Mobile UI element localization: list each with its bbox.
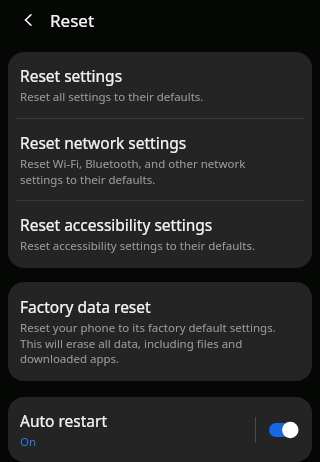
staticText: Reset all settings to their defaults. — [20, 89, 204, 105]
staticText: Reset network settings — [20, 132, 187, 153]
staticText: Reset — [50, 9, 95, 32]
staticText: Reset your phone to its factory default … — [20, 320, 276, 366]
staticText: Reset accessibility settings — [20, 214, 213, 235]
staticText: Reset settings — [20, 65, 123, 86]
button[interactable]: Back — [14, 5, 44, 35]
staticText: Reset accessibility settings to their de… — [20, 238, 255, 254]
staticText: Auto restart — [20, 410, 108, 431]
button[interactable]: Reset settings — [8, 52, 312, 118]
staticText: On — [20, 434, 37, 450]
staticText: Reset Wi-Fi, Bluetooth, and other networ… — [20, 156, 246, 187]
staticText: Factory data reset — [20, 296, 151, 317]
button[interactable]: Reset network settings — [8, 119, 312, 200]
button[interactable]: Reset accessibility settings — [8, 201, 312, 268]
button[interactable]: Factory data reset — [8, 282, 312, 381]
button[interactable]: Auto restart toggle — [267, 415, 299, 445]
button[interactable]: Auto restart — [8, 410, 255, 450]
